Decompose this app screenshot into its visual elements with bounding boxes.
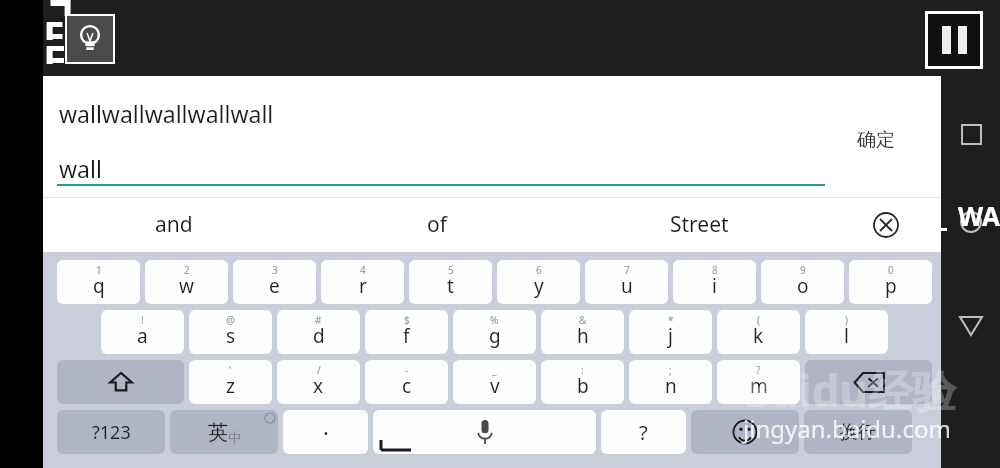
button[interactable]: Home: [949, 200, 993, 244]
button[interactable]: ?: [601, 410, 686, 454]
staticText: l: [844, 323, 849, 349]
staticText: 英: [208, 420, 228, 445]
staticText: e: [269, 273, 280, 299]
staticText: 确定: [857, 128, 895, 152]
staticText: 中: [228, 429, 241, 445]
button[interactable]: %: [453, 310, 536, 354]
staticText: h: [577, 323, 589, 349]
staticText: x: [313, 373, 324, 399]
button[interactable]: Space: [373, 410, 596, 454]
button[interactable]: 确定: [843, 122, 909, 158]
button[interactable]: &: [541, 310, 624, 354]
staticText: j: [668, 323, 673, 349]
button[interactable]: 6: [497, 260, 580, 304]
button[interactable]: Recents: [951, 114, 991, 154]
staticText: #: [315, 313, 322, 327]
staticText: &: [579, 313, 587, 327]
button[interactable]: Street: [568, 197, 831, 252]
staticText: 8: [712, 263, 718, 277]
staticText: z: [226, 373, 235, 399]
staticText: b: [577, 373, 589, 399]
staticText: d: [313, 323, 325, 349]
button[interactable]: ): [805, 310, 888, 354]
staticText: r: [359, 273, 367, 299]
staticText: (: [757, 313, 760, 327]
staticText: 换行: [840, 421, 876, 444]
staticText: ): [845, 313, 848, 327]
staticText: ?123: [92, 420, 131, 445]
staticText: of: [427, 210, 447, 239]
staticText: 9: [800, 263, 806, 277]
button[interactable]: and: [43, 197, 305, 252]
button[interactable]: Backspace: [805, 360, 932, 404]
staticText: $: [404, 313, 410, 327]
staticText: f: [403, 323, 410, 349]
button[interactable]: 8: [673, 260, 756, 304]
staticText: a: [137, 323, 148, 349]
staticText: @: [226, 313, 235, 327]
staticText: g: [489, 323, 501, 349]
button[interactable]: 换行: [804, 410, 912, 454]
staticText: 2: [184, 263, 190, 277]
staticText: 1: [96, 263, 102, 277]
staticText: u: [621, 273, 633, 299]
button[interactable]: Close suggestions: [831, 197, 941, 252]
staticText: s: [226, 323, 236, 349]
button[interactable]: 1: [57, 260, 140, 304]
staticText: ?: [756, 363, 761, 377]
staticText: 0: [888, 263, 894, 277]
staticText: -: [405, 363, 409, 377]
staticText: ?: [639, 419, 648, 446]
staticText: k: [753, 323, 764, 349]
button[interactable]: 4: [321, 260, 404, 304]
staticText: Street: [670, 210, 729, 239]
button[interactable]: Back: [949, 304, 993, 348]
button[interactable]: @: [189, 310, 272, 354]
staticText: 5: [448, 263, 454, 277]
button[interactable]: Pause: [928, 14, 980, 66]
button[interactable]: _: [453, 360, 536, 404]
staticText: i: [712, 273, 717, 299]
staticText: jingyan.baidu.com: [743, 412, 951, 445]
button[interactable]: Shift: [57, 360, 184, 404]
button[interactable]: 0: [849, 260, 932, 304]
staticText: *: [668, 313, 674, 327]
button[interactable]: 2: [145, 260, 228, 304]
staticText: /: [317, 363, 321, 377]
staticText: n: [665, 373, 677, 399]
staticText: WA: [958, 198, 1000, 233]
button[interactable]: 7: [585, 260, 668, 304]
button[interactable]: /: [277, 360, 360, 404]
staticText: ': [229, 363, 232, 377]
button[interactable]: ?123: [57, 410, 165, 454]
button[interactable]: -: [365, 360, 448, 404]
staticText: :: [581, 363, 584, 377]
button[interactable]: #: [277, 310, 360, 354]
button[interactable]: $: [365, 310, 448, 354]
staticText: 3: [272, 263, 278, 277]
button[interactable]: Hint: [67, 16, 113, 62]
staticText: 4: [360, 263, 366, 277]
button[interactable]: Emoji: [691, 410, 799, 454]
button[interactable]: 英: [170, 410, 278, 454]
staticText: o: [797, 273, 809, 299]
button[interactable]: :: [541, 360, 624, 404]
button[interactable]: 5: [409, 260, 492, 304]
button[interactable]: of: [305, 197, 568, 252]
staticText: Baidu经验: [743, 360, 957, 420]
button[interactable]: ·: [283, 410, 368, 454]
staticText: p: [885, 273, 897, 299]
button[interactable]: *: [629, 310, 712, 354]
staticText: wallwallwallwallwall: [59, 98, 274, 129]
button[interactable]: !: [101, 310, 184, 354]
staticText: c: [402, 373, 412, 399]
button[interactable]: 3: [233, 260, 316, 304]
staticText: 6: [536, 263, 542, 277]
button[interactable]: ': [189, 360, 272, 404]
button[interactable]: ;: [629, 360, 712, 404]
staticText: m: [750, 373, 768, 399]
button[interactable]: ?: [717, 360, 800, 404]
button[interactable]: (: [717, 310, 800, 354]
button[interactable]: 9: [761, 260, 844, 304]
staticText: wall: [59, 153, 102, 184]
